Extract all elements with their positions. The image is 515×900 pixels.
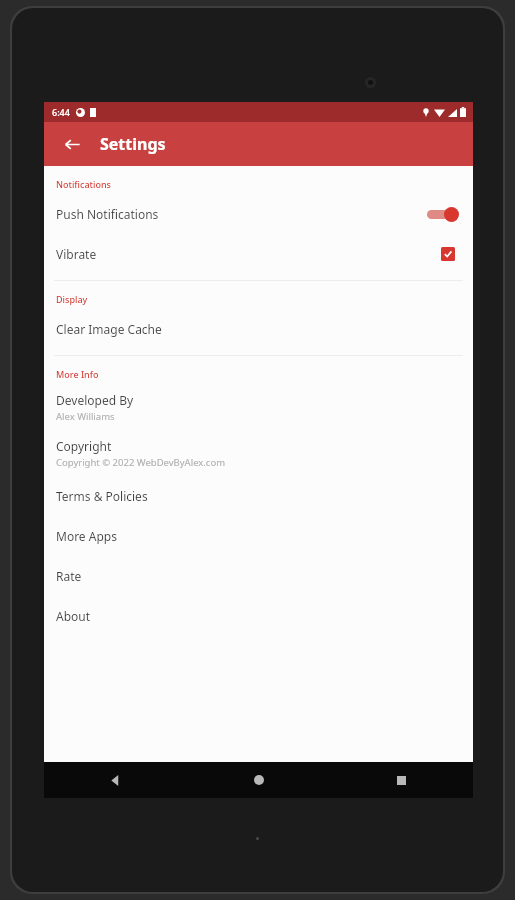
button[interactable]: Back bbox=[44, 762, 187, 798]
button[interactable]: Rate bbox=[44, 556, 473, 596]
staticText: Vibrate bbox=[56, 246, 97, 262]
button[interactable]: Vibrate checkbox bbox=[437, 243, 459, 265]
staticText: Settings bbox=[100, 133, 166, 155]
staticText: Copyright bbox=[56, 438, 112, 454]
staticText: Developed By bbox=[56, 392, 134, 408]
staticText: Display bbox=[56, 293, 88, 305]
button[interactable]: Back bbox=[56, 128, 88, 160]
button[interactable]: Home bbox=[187, 762, 330, 798]
staticText: Clear Image Cache bbox=[56, 321, 162, 337]
staticText: More Info bbox=[56, 368, 99, 380]
button[interactable]: Vibrate bbox=[44, 234, 473, 274]
button[interactable]: Clear Image Cache bbox=[44, 309, 473, 349]
staticText: About bbox=[56, 608, 91, 624]
button[interactable]: Developed By bbox=[44, 384, 473, 430]
button[interactable]: Push notifications toggle bbox=[425, 203, 459, 225]
button[interactable]: More Apps bbox=[44, 516, 473, 556]
button[interactable]: Terms & Policies bbox=[44, 476, 473, 516]
button[interactable]: About bbox=[44, 596, 473, 636]
staticText: Terms & Policies bbox=[56, 488, 148, 504]
button[interactable]: Push Notifications bbox=[44, 194, 473, 234]
staticText: More Apps bbox=[56, 528, 117, 544]
button[interactable]: Recent apps bbox=[330, 762, 473, 798]
staticText: 6:44 bbox=[52, 106, 70, 118]
staticText: Notifications bbox=[56, 178, 111, 190]
staticText: Copyright © 2022 WebDevByAlex.com bbox=[56, 456, 226, 469]
staticText: Push Notifications bbox=[56, 206, 159, 222]
staticText: Alex Williams bbox=[56, 410, 115, 423]
staticText: Rate bbox=[56, 568, 82, 584]
button[interactable]: Copyright bbox=[44, 430, 473, 476]
